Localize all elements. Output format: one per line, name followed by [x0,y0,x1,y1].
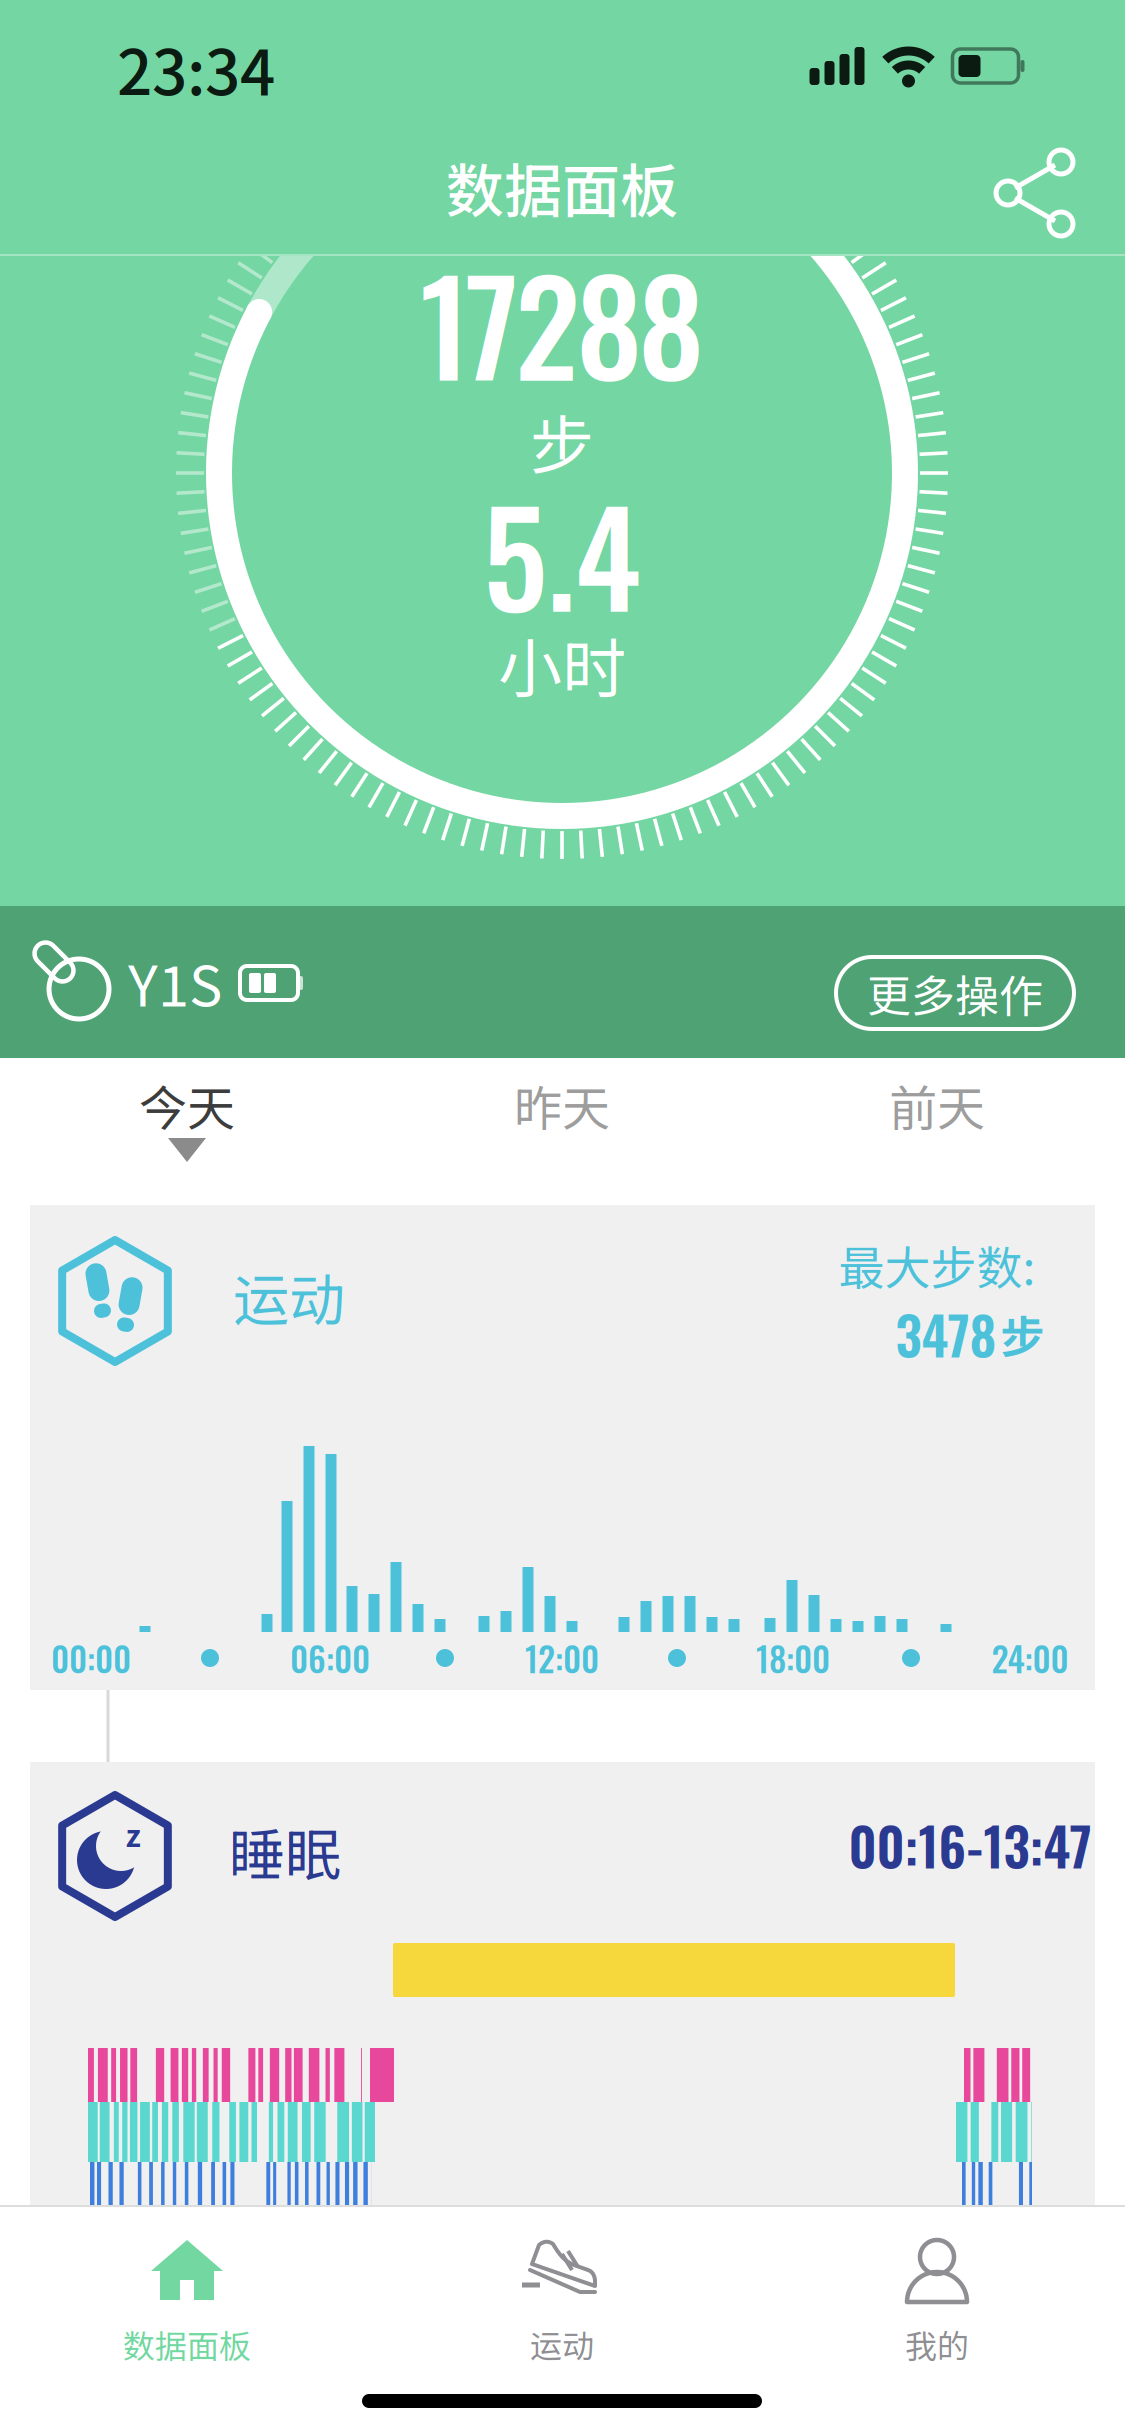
staticText: 18:00 [756,1633,830,1683]
button[interactable]: 更多操作 [836,957,1074,1029]
button[interactable]: 分享 [991,139,1091,243]
staticText: 昨天 [514,1070,610,1140]
staticText: 今天 [139,1070,235,1140]
button[interactable]: 数据面板 [27,2215,347,2385]
staticText: 06:00 [290,1633,370,1683]
staticText: 睡眠 [229,1810,341,1892]
staticText: 12:00 [525,1633,599,1683]
staticText: 00:00 [51,1633,131,1683]
staticText: 运动 [530,2321,594,2367]
staticText: 17288 [420,226,704,418]
button[interactable]: 昨天 [412,1060,712,1150]
staticText: 数据面板 [123,2321,251,2367]
staticText: Y1S [128,941,222,1023]
staticText: 前天 [889,1070,985,1140]
staticText: 步 [530,395,594,487]
staticText: 23:34 [117,23,275,113]
button[interactable]: 前天 [787,1060,1087,1150]
staticText: 最大步数: [838,1232,1035,1298]
button[interactable]: 运动 [402,2215,722,2385]
staticText: 运动 [233,1255,345,1337]
staticText: 步 [1000,1302,1044,1366]
staticText: z [125,1812,140,1856]
button[interactable]: 我的 [777,2215,1097,2385]
staticText: 3478 [895,1295,996,1373]
staticText: 我的 [905,2321,969,2367]
staticText: 00:16-13:47 [848,1806,1091,1884]
staticText: 数据面板 [446,145,678,229]
staticText: 更多操作 [867,961,1043,1025]
button[interactable]: 今天 [37,1060,337,1150]
staticText: 小时 [498,618,626,710]
staticText: 5.4 [483,457,641,649]
staticText: 24:00 [991,1633,1068,1683]
